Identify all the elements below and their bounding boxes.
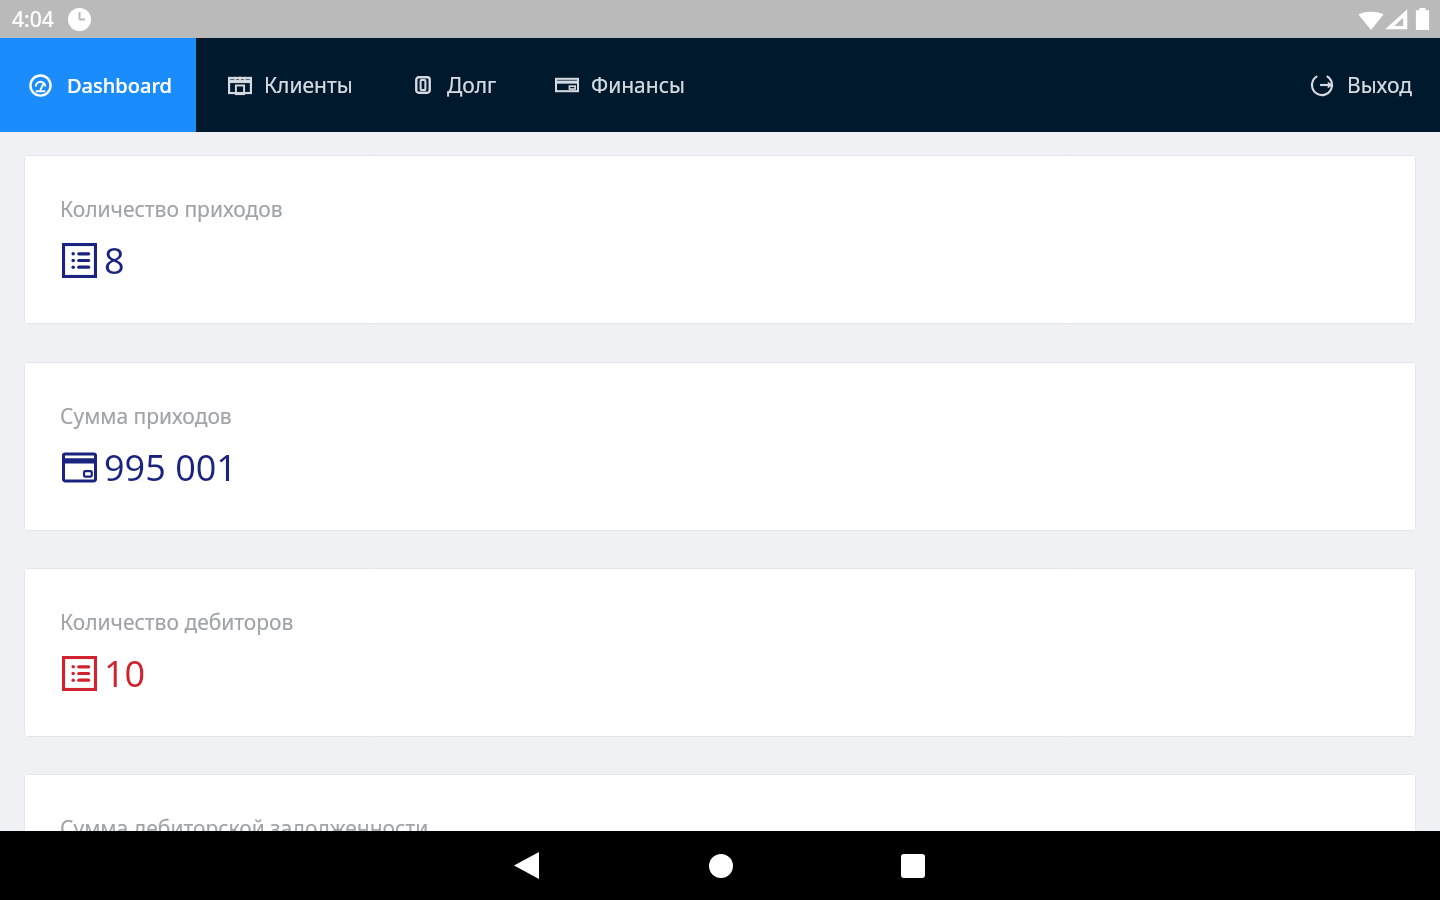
button[interactable]: Количество приходов [24, 155, 1416, 324]
staticText: 10 [104, 649, 146, 698]
staticText: Выход [1347, 71, 1412, 100]
staticText: Количество дебиторов [60, 608, 294, 637]
button[interactable]: Home [692, 837, 749, 894]
button[interactable]: Dashboard [0, 38, 196, 132]
staticText: 995 001 [104, 443, 237, 492]
button[interactable]: Сумма приходов [24, 362, 1416, 531]
staticText: 8 [104, 236, 125, 285]
staticText: 4:04 [12, 5, 54, 34]
staticText: Финансы [591, 71, 685, 100]
button[interactable]: Сумма дебиторской задолженности [24, 774, 1416, 900]
staticText: Клиенты [264, 71, 353, 100]
button[interactable]: Back [498, 837, 555, 894]
button[interactable]: Выход [1310, 38, 1440, 132]
button[interactable]: Recents [884, 837, 941, 894]
staticText: Долг [447, 71, 497, 100]
button[interactable]: Клиенты [212, 38, 369, 132]
staticText: Сумма дебиторской задолженности [60, 814, 429, 843]
staticText: Dashboard [67, 72, 172, 99]
button[interactable]: Финансы [539, 38, 701, 132]
staticText: Количество приходов [60, 195, 283, 224]
button[interactable]: Долг [395, 38, 513, 132]
button[interactable]: Количество дебиторов [24, 568, 1416, 737]
staticText: Сумма приходов [60, 402, 232, 431]
